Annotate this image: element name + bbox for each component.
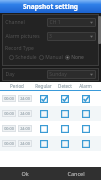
button[interactable]: Sunday: [47, 70, 96, 79]
button[interactable]: 24:00: [18, 110, 32, 117]
staticText: 3: [49, 33, 52, 40]
button[interactable]: 00:00: [2, 95, 16, 102]
button[interactable]: Schedule: [9, 54, 37, 61]
staticText: Ok: [21, 170, 29, 177]
button[interactable]: 00:00: [2, 125, 16, 132]
staticText: Regular: [35, 83, 52, 89]
staticText: Manual: [45, 54, 63, 61]
button[interactable]: Unchecked: [61, 110, 69, 118]
button[interactable]: 00:00: [0, 136, 101, 151]
staticText: CH 1: [49, 19, 61, 26]
staticText: Cancel: [67, 170, 85, 177]
staticText: 00:00: [4, 96, 14, 101]
staticText: 00:00: [4, 126, 14, 131]
staticText: 00:00: [4, 141, 14, 146]
staticText: Day: [5, 71, 15, 78]
button[interactable]: 00:00: [0, 91, 101, 106]
button[interactable]: 00:00: [0, 121, 101, 136]
staticText: Snapshot setting: [23, 2, 78, 11]
button[interactable]: Manual: [39, 54, 63, 61]
staticText: Sunday: [49, 71, 67, 78]
button[interactable]: Unchecked: [82, 140, 90, 148]
staticText: Period: [10, 83, 24, 89]
button[interactable]: Unchecked: [82, 125, 90, 133]
button[interactable]: 00:00: [2, 110, 16, 117]
button[interactable]: Unchecked: [82, 110, 90, 118]
staticText: Channel: [5, 19, 25, 26]
button[interactable]: 24:00: [18, 95, 32, 102]
staticText: None: [71, 54, 84, 61]
button[interactable]: Unchecked: [40, 140, 48, 148]
button[interactable]: None: [65, 54, 84, 61]
button[interactable]: 00:00: [0, 106, 101, 121]
button[interactable]: 00:00: [2, 140, 16, 147]
button[interactable]: Unchecked: [40, 125, 48, 133]
staticText: 24:00: [20, 141, 30, 146]
staticText: 24:00: [20, 111, 30, 116]
staticText: 24:00: [20, 96, 30, 101]
staticText: Alarm: [79, 83, 92, 89]
button[interactable]: Ok: [0, 167, 50, 180]
button[interactable]: Unchecked: [40, 110, 48, 118]
staticText: Schedule: [15, 54, 37, 61]
button[interactable]: Unchecked: [61, 125, 69, 133]
button[interactable]: 3: [47, 32, 96, 41]
staticText: 00:00: [4, 111, 14, 116]
staticText: Alarm pictures: [5, 33, 40, 40]
button[interactable]: CH 1: [47, 18, 96, 27]
button[interactable]: Checked: [61, 95, 69, 103]
button[interactable]: Unchecked: [61, 140, 69, 148]
button[interactable]: 24:00: [18, 125, 32, 132]
button[interactable]: 24:00: [18, 140, 32, 147]
button[interactable]: Cancel: [50, 167, 101, 180]
staticText: Detect: [58, 83, 72, 89]
staticText: Record Type: [5, 45, 34, 52]
button[interactable]: Checked: [82, 95, 90, 103]
button[interactable]: Checked: [40, 95, 48, 103]
staticText: 24:00: [20, 126, 30, 131]
